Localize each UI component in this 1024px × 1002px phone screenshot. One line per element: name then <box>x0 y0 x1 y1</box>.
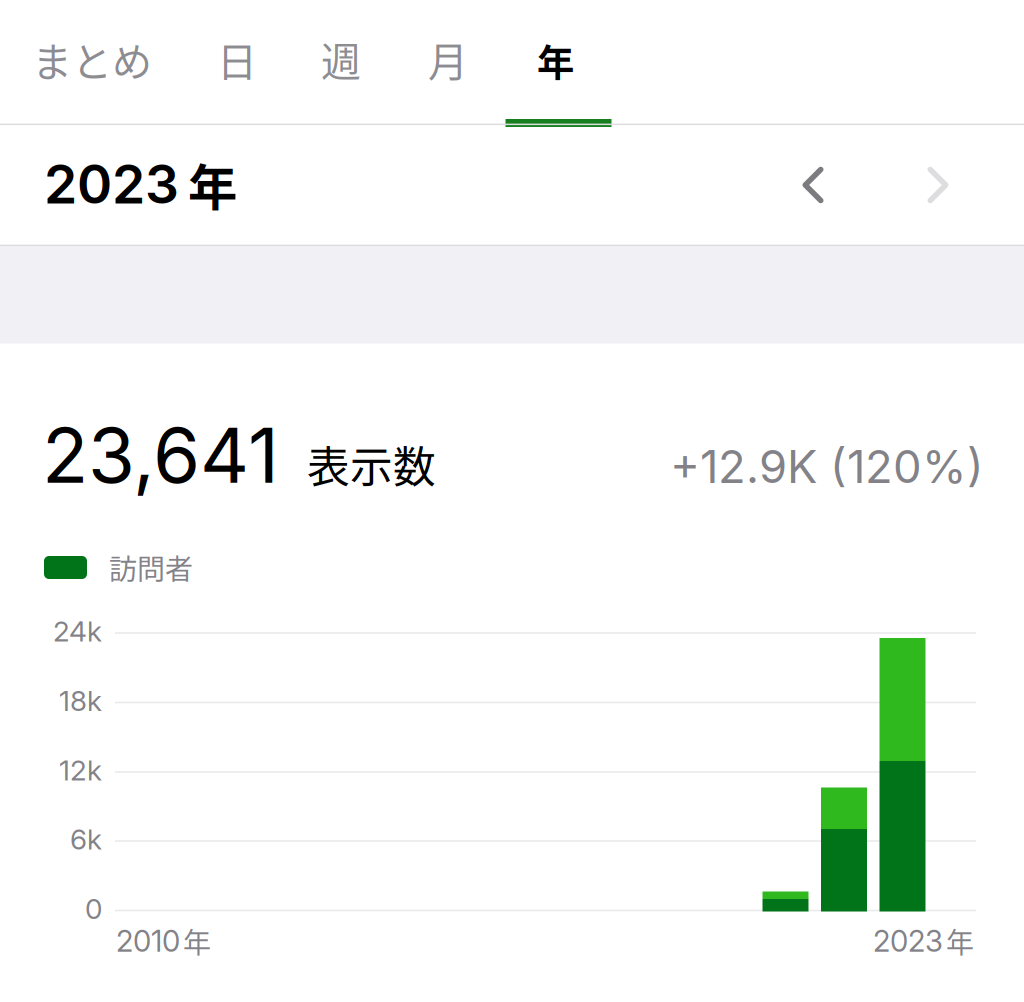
staticText: 2023 <box>873 923 943 959</box>
staticText: 訪問者 <box>109 547 193 588</box>
staticText: 2010 <box>116 923 180 959</box>
staticText: 週 <box>321 30 361 88</box>
staticText: 年 <box>537 33 574 88</box>
staticText: +12.9K (120%) <box>670 439 984 494</box>
button[interactable]: 年 <box>502 0 608 124</box>
staticText: 6k <box>70 822 102 856</box>
button[interactable]: 日 <box>185 0 289 124</box>
button[interactable]: まとめ <box>17 0 167 124</box>
button[interactable]: 次の期間 <box>892 139 984 231</box>
staticText: 表示数 <box>307 433 436 495</box>
staticText: 23,641 <box>42 409 279 501</box>
button[interactable]: 月 <box>396 0 500 124</box>
staticText: 12k <box>59 753 102 787</box>
staticText: 日 <box>217 30 257 88</box>
staticText: 年 <box>188 148 237 220</box>
staticText: 年 <box>183 921 211 961</box>
staticText: 0 <box>85 892 102 926</box>
staticText: 18k <box>59 684 102 718</box>
staticText: 月 <box>428 30 468 88</box>
staticText: 年 <box>946 921 974 961</box>
button[interactable]: 週 <box>289 0 393 124</box>
staticText: 24k <box>53 614 102 648</box>
staticText: まとめ <box>32 30 152 88</box>
staticText: 2023 <box>44 152 179 216</box>
button[interactable]: 前の期間 <box>767 139 859 231</box>
